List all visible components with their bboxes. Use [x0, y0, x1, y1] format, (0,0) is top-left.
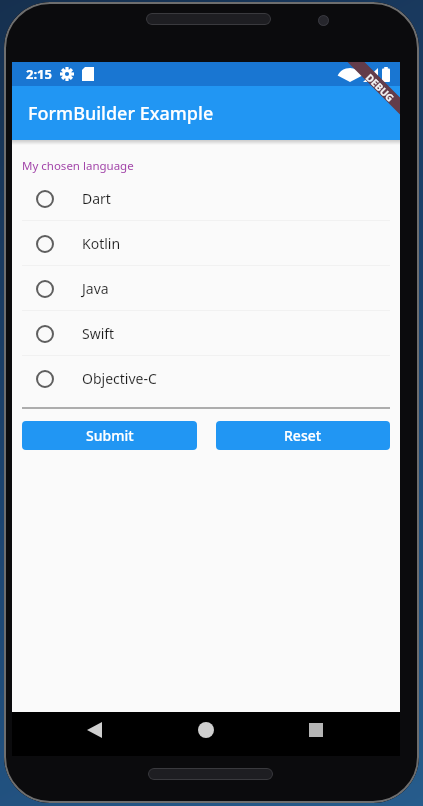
staticText: Submit: [86, 426, 134, 445]
staticText: FormBuilder Example: [28, 101, 214, 126]
button[interactable]: Java: [12, 266, 400, 311]
staticText: Reset: [284, 426, 322, 445]
button[interactable]: Dart: [12, 176, 400, 221]
button[interactable]: Swift: [12, 311, 400, 356]
staticText: Swift: [82, 324, 115, 343]
button[interactable]: Reset: [216, 421, 390, 450]
staticText: Objective-C: [82, 369, 157, 388]
staticText: Kotlin: [82, 234, 121, 253]
button[interactable]: [198, 722, 214, 738]
button[interactable]: [87, 722, 102, 738]
staticText: 2:15: [26, 65, 52, 83]
staticText: DEBUG: [364, 70, 398, 104]
button[interactable]: Kotlin: [12, 221, 400, 266]
staticText: Java: [82, 279, 109, 298]
staticText: Dart: [82, 189, 111, 208]
button[interactable]: Objective-C: [12, 356, 400, 401]
staticText: My chosen language: [22, 158, 134, 174]
button[interactable]: Submit: [22, 421, 197, 450]
